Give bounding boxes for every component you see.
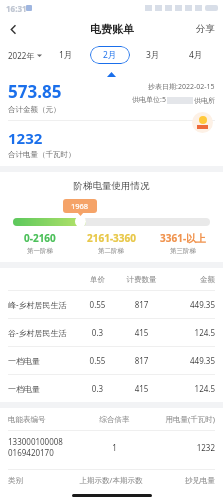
staticText: 峰-乡村居民生活 bbox=[8, 299, 78, 310]
staticText: 2月 bbox=[103, 49, 117, 61]
staticText: 第一阶梯 bbox=[27, 247, 53, 255]
staticText: 合计电量（千瓦时） bbox=[8, 150, 76, 159]
staticText: 分享 bbox=[196, 23, 215, 35]
staticText: 0.3 bbox=[78, 327, 117, 338]
staticText: 4月 bbox=[189, 49, 203, 61]
staticText: 0-2160 bbox=[24, 231, 56, 245]
button[interactable]: 一档电量 bbox=[0, 375, 223, 402]
staticText: 817 bbox=[117, 299, 166, 310]
staticText: 一档电量 bbox=[8, 384, 78, 394]
staticText: 第二阶梯 bbox=[98, 247, 124, 255]
staticText: 124.5 bbox=[166, 327, 215, 338]
button[interactable]: Feedback bbox=[192, 112, 213, 133]
button[interactable]: 谷-乡村居民生活 bbox=[0, 319, 223, 346]
staticText: 16:31 bbox=[6, 3, 27, 14]
button[interactable]: 分享 bbox=[188, 19, 223, 39]
button[interactable]: 2月 bbox=[90, 46, 130, 64]
button[interactable]: 一档电量 bbox=[0, 347, 223, 374]
staticText: 0.55 bbox=[78, 355, 117, 366]
staticText: 一档电量 bbox=[8, 356, 78, 366]
staticText: 单价 bbox=[78, 275, 117, 284]
staticText: 0.55 bbox=[78, 299, 117, 310]
staticText: 阶梯电量使用情况 bbox=[0, 180, 223, 192]
staticText: 用电量(千瓦时) bbox=[144, 414, 215, 424]
staticText: 2022年 bbox=[8, 50, 35, 61]
staticText: 449.35 bbox=[166, 299, 215, 310]
staticText: 抄见电量 bbox=[157, 476, 215, 485]
staticText: 上期示数/本期示数 bbox=[65, 475, 157, 485]
staticText: 1232 bbox=[144, 442, 215, 453]
staticText: 电能表编号 bbox=[8, 415, 85, 424]
staticText: 415 bbox=[117, 327, 166, 338]
staticText: 供电单位:5 bbox=[132, 95, 166, 105]
staticText: 第三阶梯 bbox=[170, 247, 196, 255]
staticText: 类别 bbox=[8, 476, 65, 485]
staticText: 415 bbox=[117, 383, 166, 394]
button[interactable]: 2022年 bbox=[6, 47, 44, 64]
button[interactable]: 133000100008 bbox=[0, 431, 223, 463]
staticText: 1月 bbox=[59, 49, 73, 61]
staticText: 合计金额（元） bbox=[8, 105, 61, 114]
staticText: 抄表日期:2022-02-15 bbox=[148, 82, 215, 92]
button[interactable]: Back bbox=[0, 16, 26, 42]
staticText: 124.5 bbox=[166, 383, 215, 394]
staticText: 金额 bbox=[166, 275, 215, 284]
staticText: 电费账单 bbox=[90, 22, 134, 36]
staticText: 133000100008 bbox=[8, 436, 63, 447]
staticText: 综合倍率 bbox=[85, 415, 144, 424]
staticText: 0169420170 bbox=[8, 447, 54, 458]
staticText: 3月 bbox=[146, 49, 160, 61]
staticText: 供电所 bbox=[194, 96, 215, 105]
button[interactable]: 4月 bbox=[176, 46, 216, 64]
staticText: 0.3 bbox=[78, 383, 117, 394]
staticText: 1232 bbox=[8, 128, 43, 148]
staticText: 计费数量 bbox=[117, 275, 166, 284]
button[interactable]: 峰-乡村居民生活 bbox=[0, 291, 223, 318]
staticText: 817 bbox=[117, 355, 166, 366]
staticText: 2161-3360 bbox=[87, 231, 136, 245]
button[interactable]: 3月 bbox=[133, 46, 173, 64]
staticText: 449.35 bbox=[166, 355, 215, 366]
staticText: 谷-乡村居民生活 bbox=[8, 327, 78, 338]
staticText: 1968 bbox=[71, 201, 89, 211]
button[interactable]: 1月 bbox=[46, 46, 86, 64]
staticText: 3361-以上 bbox=[160, 231, 207, 245]
staticText: 1 bbox=[85, 442, 144, 453]
staticText: 573.85 bbox=[8, 80, 62, 103]
